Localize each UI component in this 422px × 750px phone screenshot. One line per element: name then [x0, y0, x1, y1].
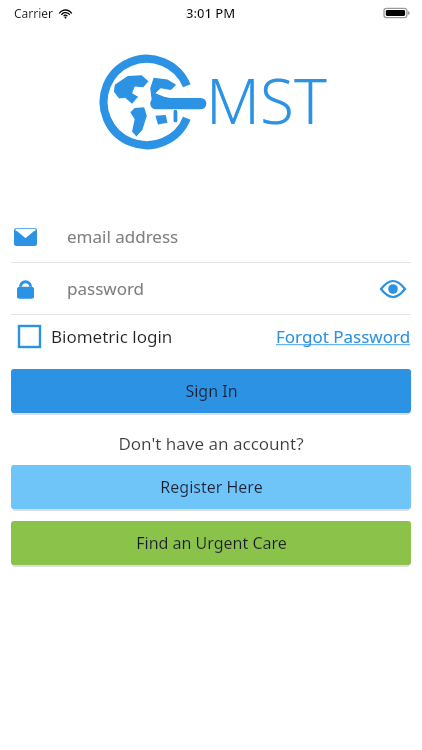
staticText: Sign In	[185, 380, 238, 402]
staticText: 3:01 PM	[186, 4, 236, 22]
button[interactable]: Forgot Password	[268, 319, 422, 354]
staticText: Biometric login	[51, 325, 173, 348]
staticText: Carrier	[14, 5, 54, 21]
button[interactable]: Sign In	[11, 369, 411, 413]
staticText: email address	[67, 225, 408, 248]
button[interactable]: email address	[0, 211, 422, 262]
button[interactable]: password	[0, 263, 422, 314]
staticText: Forgot Password	[276, 325, 411, 348]
staticText: Don't have an account?	[118, 432, 304, 455]
staticText: password	[67, 277, 378, 300]
button[interactable]: Register Here	[11, 465, 411, 509]
staticText: Register Here	[160, 476, 263, 498]
staticText: Find an Urgent Care	[136, 532, 287, 554]
button[interactable]: Find an Urgent Care	[11, 521, 411, 565]
button[interactable]: Show password	[378, 274, 408, 304]
staticText: MST	[206, 58, 327, 142]
button[interactable]: Biometric login	[0, 319, 181, 354]
